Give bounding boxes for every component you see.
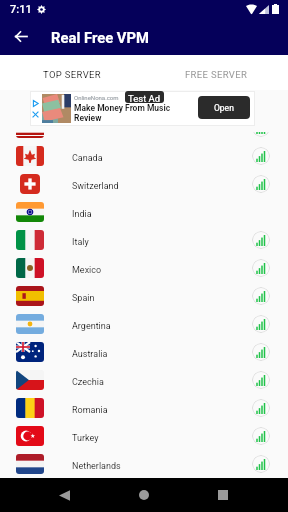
button[interactable]: Back bbox=[48, 479, 80, 511]
staticText: Turkey bbox=[72, 433, 99, 444]
button[interactable]: Mexico bbox=[0, 254, 288, 282]
button[interactable]: Recents bbox=[207, 479, 239, 511]
button[interactable]: Italy bbox=[0, 226, 288, 254]
button[interactable]: Open bbox=[198, 96, 250, 119]
button[interactable]: Signal strength bbox=[0, 132, 288, 142]
button[interactable]: Australia bbox=[0, 338, 288, 366]
button[interactable]: Netherlands bbox=[0, 450, 288, 478]
staticText: Open bbox=[214, 103, 234, 113]
staticText: Spain bbox=[72, 293, 95, 304]
button[interactable]: Signal strength bbox=[252, 343, 270, 361]
button[interactable]: Signal strength bbox=[252, 259, 270, 277]
staticText: Romania bbox=[72, 405, 108, 416]
staticText: Italy bbox=[72, 237, 89, 248]
staticText: Test Ad bbox=[128, 93, 161, 103]
staticText: India bbox=[72, 209, 92, 220]
button[interactable]: Signal strength bbox=[252, 315, 270, 333]
staticText: Netherlands bbox=[72, 461, 121, 472]
staticText: FREE SERVER bbox=[185, 69, 248, 80]
button[interactable]: FREE SERVER bbox=[144, 55, 288, 90]
button[interactable]: India bbox=[0, 198, 288, 226]
button[interactable]: TOP SERVER bbox=[0, 55, 144, 90]
button[interactable]: Spain bbox=[0, 282, 288, 310]
button[interactable]: Switzerland bbox=[0, 170, 288, 198]
staticText: OnlineNona.com bbox=[74, 94, 119, 101]
button[interactable]: OnlineNona.com bbox=[30, 91, 255, 126]
button[interactable]: Signal strength bbox=[252, 455, 270, 473]
button[interactable]: Home bbox=[128, 479, 160, 511]
staticText: Australia bbox=[72, 349, 108, 360]
button[interactable]: Canada bbox=[0, 142, 288, 170]
button[interactable]: Signal strength bbox=[252, 132, 270, 137]
staticText: Argentina bbox=[72, 321, 111, 332]
staticText: Real Free VPM bbox=[51, 29, 150, 46]
button[interactable]: Signal strength bbox=[252, 231, 270, 249]
staticText: Make Money From Music Review bbox=[74, 103, 196, 123]
staticText: Mexico bbox=[72, 265, 102, 276]
button[interactable]: Signal strength bbox=[252, 175, 270, 193]
staticText: Czechia bbox=[72, 377, 104, 388]
staticText: 7:11 bbox=[10, 3, 32, 16]
staticText: TOP SERVER bbox=[43, 69, 102, 80]
button[interactable]: Turkey bbox=[0, 422, 288, 450]
button[interactable]: Signal strength bbox=[252, 427, 270, 445]
button[interactable]: Signal strength bbox=[252, 371, 270, 389]
button[interactable]: Signal strength bbox=[252, 287, 270, 305]
button[interactable]: Czechia bbox=[0, 366, 288, 394]
button[interactable]: Signal strength bbox=[252, 147, 270, 165]
staticText: Switzerland bbox=[72, 181, 119, 192]
button[interactable]: Back bbox=[8, 23, 34, 49]
button[interactable]: Romania bbox=[0, 394, 288, 422]
button[interactable]: Argentina bbox=[0, 310, 288, 338]
staticText: Canada bbox=[72, 153, 103, 164]
button[interactable]: Signal strength bbox=[252, 399, 270, 417]
